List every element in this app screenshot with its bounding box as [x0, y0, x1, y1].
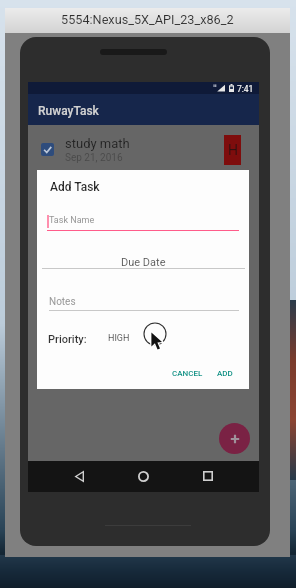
staticText: HIGH [108, 333, 130, 344]
staticText: Priority: [48, 333, 87, 346]
button[interactable]: Task Name [47, 212, 239, 231]
staticText: 5554:Nexus_5X_API_23_x86_2 [61, 12, 234, 27]
staticText: Due Date [121, 256, 166, 269]
staticText: CANCEL [172, 369, 203, 378]
button[interactable]: Completed [41, 143, 54, 156]
staticText: Add Task [50, 180, 100, 194]
button[interactable]: ADD [214, 366, 236, 381]
button[interactable]: Due Date [42, 251, 245, 269]
staticText: Task Name [49, 215, 95, 226]
button[interactable]: Add task [219, 423, 250, 454]
staticText: RuwayTask [38, 104, 99, 118]
staticText: H [228, 142, 238, 158]
staticText: 7:41 [237, 84, 254, 94]
button[interactable]: HIGH [108, 333, 130, 344]
staticText: Sep 21, 2016 [65, 152, 123, 164]
button[interactable]: Back [65, 462, 93, 490]
staticText: ADD [217, 369, 233, 378]
button[interactable]: Notes [49, 293, 239, 311]
staticText: study math [65, 136, 130, 151]
button[interactable]: CANCEL [169, 366, 206, 381]
button[interactable]: Recent apps [194, 462, 222, 490]
button[interactable]: Completed [28, 130, 259, 169]
staticText: Notes [49, 296, 76, 308]
button[interactable]: Home [129, 462, 157, 490]
